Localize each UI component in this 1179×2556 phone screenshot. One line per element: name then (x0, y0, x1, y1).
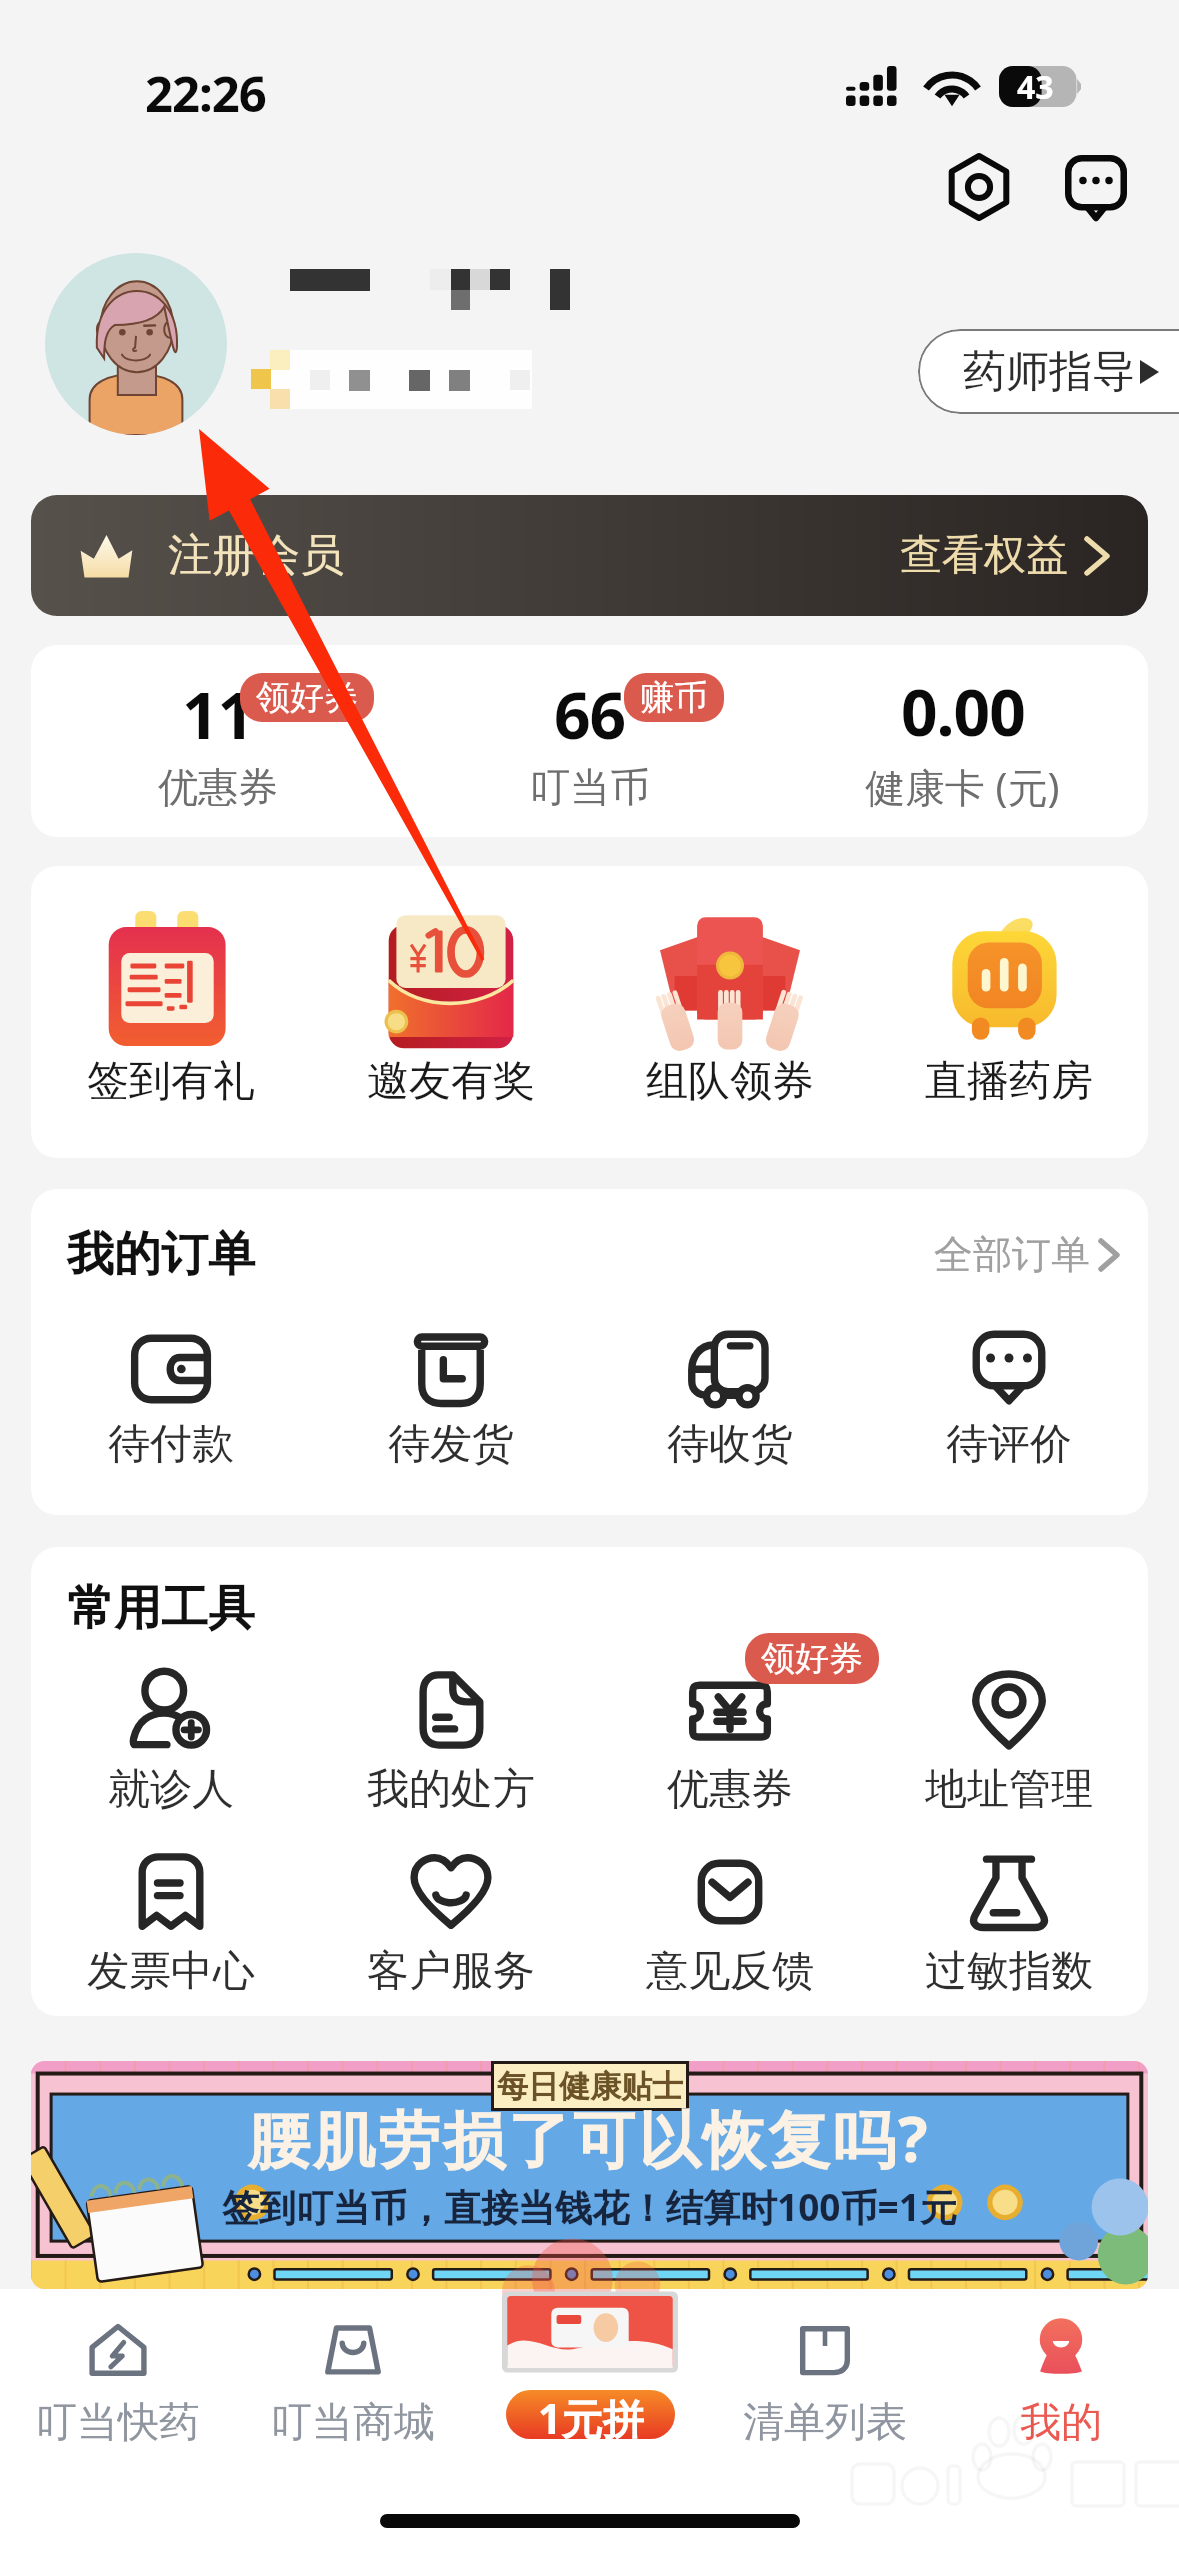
button[interactable]: 待付款 (31, 1322, 311, 1471)
button[interactable]: 发票中心 (31, 1847, 311, 1998)
button[interactable]: 直播药房 (869, 911, 1148, 1108)
button[interactable]: 组队领券 (590, 911, 869, 1108)
staticText: 我的订单 (67, 1225, 255, 1284)
staticText: 常用工具 (67, 1579, 255, 1638)
button[interactable]: 1元拼 (502, 2270, 678, 2450)
button[interactable]: 叮当商城 (235, 2315, 471, 2449)
button[interactable]: 意见反馈 (590, 1847, 869, 1998)
staticText: 清单列表 (743, 2397, 907, 2449)
button[interactable]: 过敏指数 (869, 1847, 1148, 1998)
staticText: 优惠券 (667, 1763, 793, 1816)
staticText: 健康卡 (元) (865, 759, 1060, 814)
staticText: 叮当商城 (271, 2397, 435, 2449)
button[interactable]: 签到有礼 (31, 911, 311, 1108)
staticText: 意见反馈 (646, 1945, 814, 1998)
button[interactable]: 叮当快药 (0, 2315, 235, 2449)
staticText: 领好券 (761, 1637, 863, 1680)
button[interactable]: Settings (931, 139, 1027, 235)
staticText: 待发货 (388, 1418, 514, 1471)
staticText: 叮当快药 (36, 2397, 200, 2449)
staticText: 0.00 (901, 668, 1025, 755)
staticText: 领好券 (256, 676, 358, 719)
staticText: 待付款 (108, 1418, 234, 1471)
staticText: 药师指导 (963, 345, 1135, 399)
button[interactable]: 地址管理 (869, 1665, 1148, 1816)
staticText: 腰肌劳损了可以恢复吗? (248, 2096, 931, 2181)
button[interactable]: 全部订单 (934, 1230, 1118, 1279)
button[interactable]: 待收货 (590, 1322, 869, 1471)
staticText: 签到叮当币，直接当钱花！结算时100币=1元 (222, 2181, 957, 2232)
button[interactable]: Profile avatar (45, 253, 227, 435)
button[interactable]: 每日健康贴士 (31, 2061, 1148, 2289)
staticText: 客户服务 (367, 1945, 535, 1998)
staticText: 我的处方 (367, 1763, 535, 1816)
button[interactable]: 0.00 (776, 668, 1148, 814)
staticText: 过敏指数 (925, 1945, 1093, 1998)
staticText: 查看权益 (900, 529, 1068, 582)
button[interactable]: 领好券 (590, 1665, 869, 1816)
staticText: 就诊人 (108, 1763, 234, 1816)
button[interactable]: 11 (31, 671, 404, 812)
button[interactable]: 就诊人 (31, 1665, 311, 1816)
button[interactable]: Messages (1048, 139, 1144, 235)
staticText: 1元拼 (538, 2390, 644, 2439)
staticText: 22:26 (145, 60, 266, 127)
button[interactable]: 待评价 (869, 1322, 1148, 1471)
staticText: 地址管理 (925, 1763, 1093, 1816)
staticText: 签到有礼 (87, 1055, 255, 1108)
staticText: 赚币 (640, 676, 708, 719)
button[interactable]: 待发货 (311, 1322, 590, 1471)
staticText: 发票中心 (87, 1945, 255, 1998)
button[interactable]: 药师指导 (918, 329, 1179, 414)
staticText: 11 (182, 671, 254, 758)
button[interactable]: 清单列表 (707, 2315, 943, 2449)
staticText: 待评价 (946, 1418, 1072, 1471)
staticText: 注册会员 (168, 528, 344, 583)
staticText: 全部订单 (934, 1230, 1090, 1279)
button[interactable]: 客户服务 (311, 1847, 590, 1998)
staticText: 我的 (1020, 2397, 1102, 2449)
staticText: 叮当币 (530, 762, 650, 812)
staticText: 直播药房 (925, 1055, 1093, 1108)
button[interactable]: 我的 (943, 2315, 1179, 2449)
staticText: 每日健康贴士 (497, 2067, 683, 2106)
staticText: 待收货 (667, 1418, 793, 1471)
staticText: 66 (554, 671, 626, 758)
button[interactable]: 注册会员 (31, 495, 1148, 616)
button[interactable]: 邀友有奖 (311, 911, 590, 1108)
button[interactable]: 66 (404, 671, 776, 812)
staticText: 邀友有奖 (367, 1055, 535, 1108)
staticText: 组队领券 (646, 1055, 814, 1108)
button[interactable]: 我的处方 (311, 1665, 590, 1816)
staticText: 优惠券 (158, 762, 278, 812)
staticText: 43 (1017, 65, 1054, 106)
